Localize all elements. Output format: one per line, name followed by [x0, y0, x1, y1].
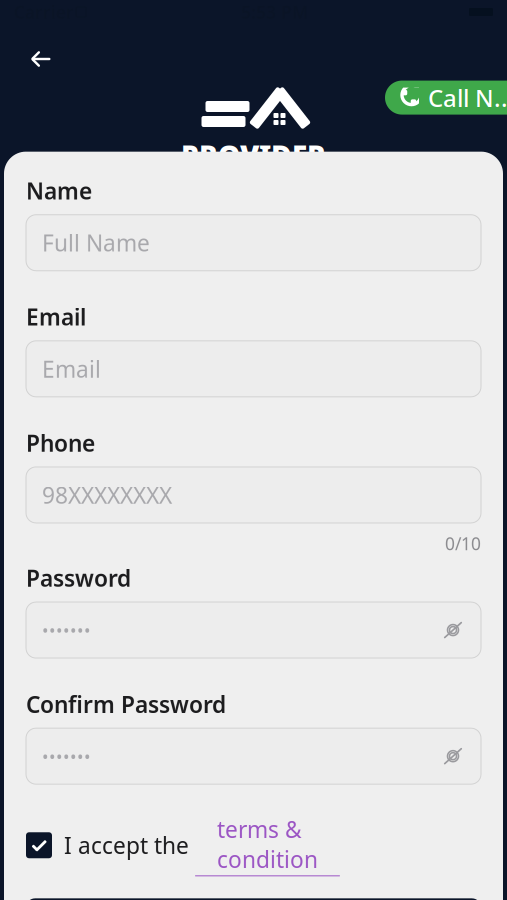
- staticText: PROVIDER: [181, 136, 326, 173]
- button[interactable]: Accept terms and conditions: [26, 832, 52, 858]
- button[interactable]: Back: [18, 38, 64, 80]
- button[interactable]: 98XXXXXXXX: [26, 467, 481, 523]
- staticText: Confirm Password: [26, 689, 226, 719]
- staticText: Name: [26, 176, 92, 206]
- staticText: 98XXXXXXXX: [42, 480, 172, 510]
- staticText: Email: [42, 354, 101, 384]
- staticText: Full Name: [42, 228, 150, 258]
- staticText: 0/10: [445, 532, 481, 555]
- staticText: Phone: [26, 428, 95, 458]
- button[interactable]: terms & condition: [195, 814, 340, 876]
- staticText: •••••••: [42, 745, 91, 768]
- button[interactable]: Full Name: [26, 215, 481, 271]
- staticText: Email: [26, 302, 86, 332]
- staticText: Call N...: [428, 82, 507, 114]
- button[interactable]: Call N...: [385, 81, 507, 115]
- button[interactable]: •••••••: [26, 602, 481, 658]
- staticText: •••••••: [42, 619, 91, 642]
- staticText: Password: [26, 563, 131, 593]
- staticText: I accept the: [52, 830, 195, 860]
- staticText: terms & condition: [217, 814, 318, 874]
- button[interactable]: •••••••: [26, 728, 481, 784]
- button[interactable]: Email: [26, 341, 481, 397]
- button[interactable]: Sign Up: [26, 898, 481, 900]
